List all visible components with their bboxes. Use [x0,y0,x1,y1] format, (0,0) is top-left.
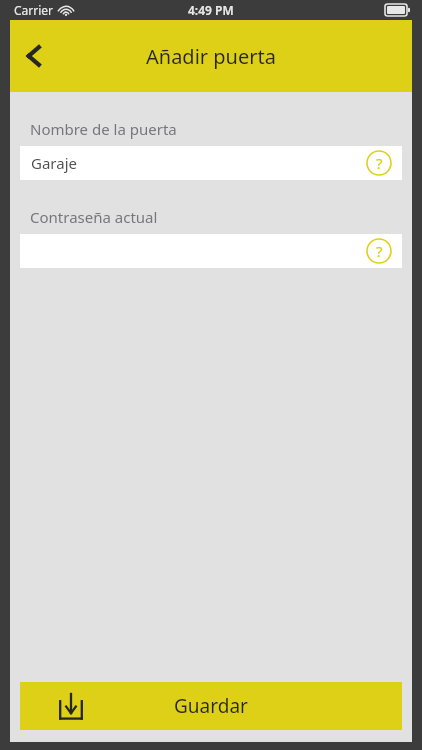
staticText: Contraseña actual [30,207,158,227]
button[interactable]: Back [10,32,58,80]
button[interactable]: Garaje [20,146,402,180]
staticText: 4:49 PM [188,2,234,18]
staticText: Garaje [31,153,77,173]
staticText: Añadir puerta [146,43,276,70]
staticText: ? [376,153,383,173]
staticText: Carrier [14,2,54,18]
button[interactable]: Guardar [20,682,402,730]
button[interactable]: Help [20,234,402,268]
button[interactable]: Help [364,236,394,266]
staticText: Nombre de la puerta [30,119,177,139]
staticText: ? [376,241,383,261]
staticText: Guardar [174,693,248,719]
button[interactable]: Help [364,148,394,178]
